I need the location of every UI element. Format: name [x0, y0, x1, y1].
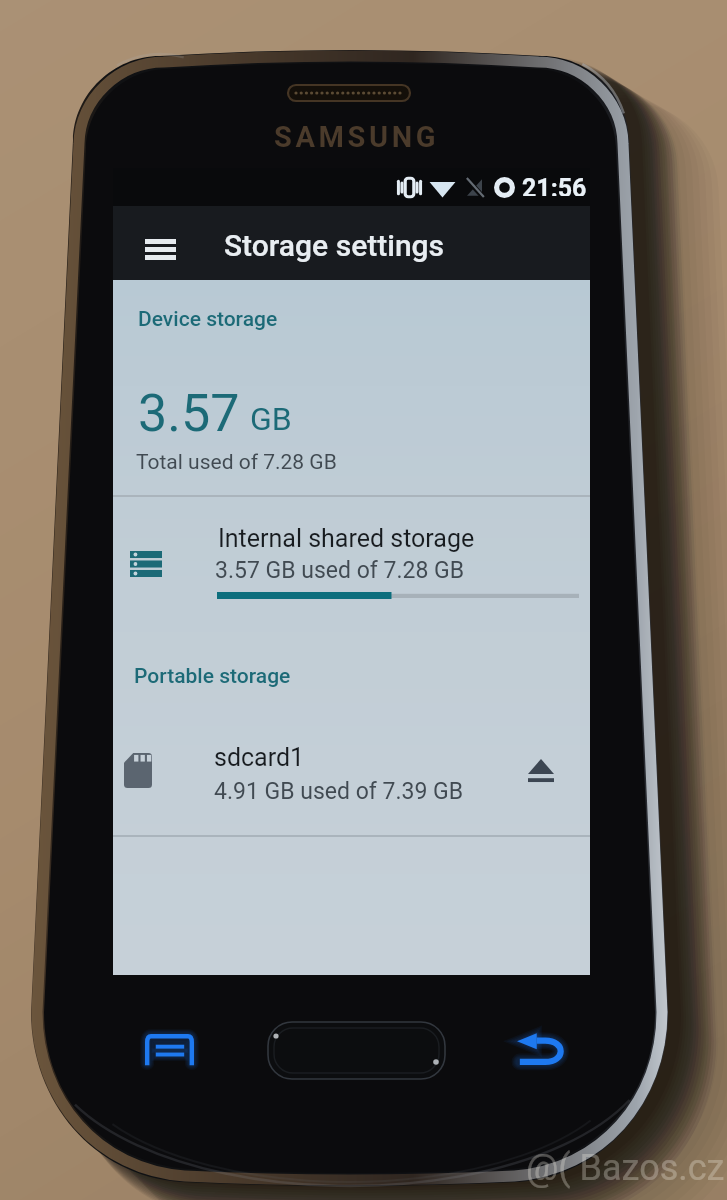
button[interactable]: Back	[501, 1017, 580, 1081]
staticText: 3.57	[138, 383, 240, 444]
button[interactable]: Eject sdcard1	[113, 710, 590, 828]
staticText: Portable storage	[134, 664, 291, 689]
staticText: SAMSUNG	[274, 120, 440, 154]
button[interactable]: Eject sdcard1	[512, 742, 570, 800]
staticText: sdcard1	[214, 743, 305, 772]
staticText: 21:56	[522, 174, 587, 196]
staticText: GB	[250, 400, 292, 438]
staticText: 4.91 GB used of 7.39 GB	[214, 778, 464, 805]
button[interactable]: Open navigation drawer	[131, 220, 189, 278]
staticText: 3.57 GB used of 7.28 GB	[215, 557, 465, 584]
staticText: Internal shared storage	[218, 524, 475, 553]
button[interactable]	[113, 497, 590, 621]
staticText: @( Bazos.cz	[526, 1147, 725, 1189]
staticText: Storage settings	[224, 228, 445, 263]
button[interactable]: Home	[268, 1022, 445, 1079]
button[interactable]: Menu	[129, 1018, 210, 1079]
staticText: Total used of 7.28 GB	[136, 450, 337, 475]
staticText: Device storage	[138, 307, 278, 332]
